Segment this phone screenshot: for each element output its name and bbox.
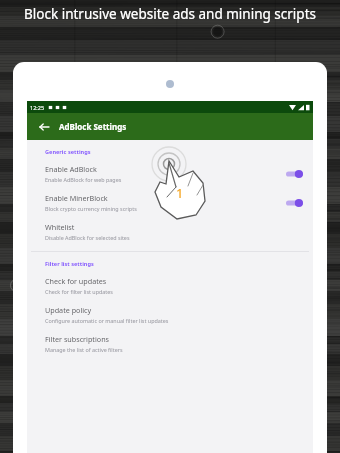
staticText: Check for updates [45,276,107,286]
staticText: Filter list settings [45,260,94,268]
button[interactable]: Enable AdBlock [27,159,313,188]
staticText: Manage the list of active filters [45,346,123,353]
button[interactable]: Toggle Enable AdBlock [286,169,303,179]
button[interactable]: Whitelist [27,217,313,246]
button[interactable]: Toggle Enable MinerBlock [286,198,303,208]
staticText: Enable AdBlock for web pages [45,176,122,183]
staticText: Disable AdBlock for selected sites [45,234,130,241]
staticText: Check for filter list updates [45,288,113,295]
staticText: Block intrusive website ads and mining s… [20,5,320,23]
staticText: Update policy [45,305,92,315]
button[interactable]: Filter subscriptions [27,329,313,358]
staticText: Configure automatic or manual filter lis… [45,317,169,324]
button[interactable]: Update policy [27,300,313,329]
button[interactable]: Enable MinerBlock [27,188,313,217]
button[interactable]: Check for updates [27,271,313,300]
staticText: Generic settings [45,148,91,156]
staticText: 1 [176,184,184,202]
staticText: Block crypto currency mining scripts [45,205,137,212]
staticText: Whitelist [45,222,75,232]
staticText: 12:25 [30,104,45,111]
staticText: AdBlock Settings [59,121,127,132]
staticText: Filter subscriptions [45,334,110,344]
staticText: Enable AdBlock [45,164,97,174]
button[interactable]: Back [35,118,53,136]
staticText: Enable MinerBlock [45,193,108,203]
